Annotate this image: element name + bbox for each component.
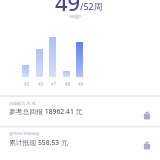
staticText: 累计抵现 558.53 元 bbox=[9, 138, 68, 147]
staticText: 已维护 bbox=[69, 14, 81, 19]
staticText: 45 bbox=[24, 81, 30, 87]
staticText: 46 bbox=[38, 81, 44, 87]
staticText: 49 bbox=[55, 0, 81, 17]
staticText: 使用 69 张贴现金 bbox=[9, 131, 40, 136]
staticText: 47 bbox=[51, 81, 57, 87]
staticText: 已维修为 75 笔 bbox=[9, 101, 36, 106]
button[interactable]: 查看回报明细 bbox=[141, 109, 153, 121]
staticText: /52周 bbox=[80, 0, 103, 12]
button[interactable]: 查看抵现明细 bbox=[141, 139, 153, 151]
staticText: 参考总回报 18962.41 元 bbox=[9, 107, 83, 116]
button[interactable]: 已维修为 75 笔 bbox=[0, 97, 160, 127]
button[interactable]: 使用 69 张贴现金 bbox=[0, 128, 160, 158]
staticText: 48 bbox=[65, 81, 71, 87]
staticText: 49 bbox=[78, 81, 84, 87]
